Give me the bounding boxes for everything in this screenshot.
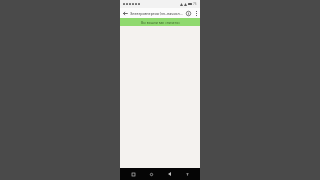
button[interactable]: Back	[120, 8, 130, 18]
button[interactable]: Recent apps	[128, 169, 138, 179]
button[interactable]: Электроэнергия (эл.-начисл…	[130, 11, 184, 16]
staticText: 76	[193, 2, 197, 6]
button[interactable]: Вы вошли как «ничего»	[120, 18, 200, 26]
button[interactable]: Home	[146, 169, 156, 179]
button[interactable]: Information	[184, 9, 193, 18]
button[interactable]: Hide keyboard	[182, 169, 192, 179]
button[interactable]: More options	[193, 8, 200, 18]
staticText: Вы вошли как «ничего»	[141, 20, 180, 25]
button[interactable]: Back	[164, 169, 174, 179]
